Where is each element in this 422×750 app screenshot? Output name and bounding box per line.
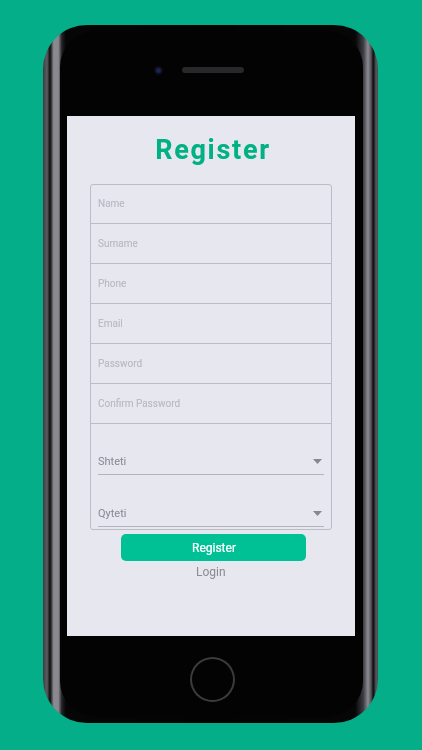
staticText: Email xyxy=(98,318,123,330)
button[interactable]: Login xyxy=(196,565,226,579)
button[interactable]: Name xyxy=(90,184,332,223)
staticText: Phone xyxy=(98,278,127,290)
button[interactable]: Password xyxy=(90,344,332,383)
staticText: Name xyxy=(98,198,125,210)
button[interactable]: Confirm Password xyxy=(90,384,332,423)
staticText: Confirm Password xyxy=(98,398,181,410)
staticText: Register xyxy=(192,541,236,555)
button[interactable]: Email xyxy=(90,304,332,343)
button[interactable]: Register xyxy=(121,534,306,561)
staticText: Qyteti xyxy=(98,507,127,520)
staticText: Shteti xyxy=(98,455,127,468)
button[interactable]: Shteti xyxy=(90,424,332,476)
button[interactable]: Qyteti xyxy=(90,476,332,528)
button[interactable]: Surname xyxy=(90,224,332,263)
staticText: Password xyxy=(98,358,143,370)
button[interactable]: Phone xyxy=(90,264,332,303)
staticText: Register xyxy=(155,134,271,166)
staticText: Surname xyxy=(98,238,138,250)
